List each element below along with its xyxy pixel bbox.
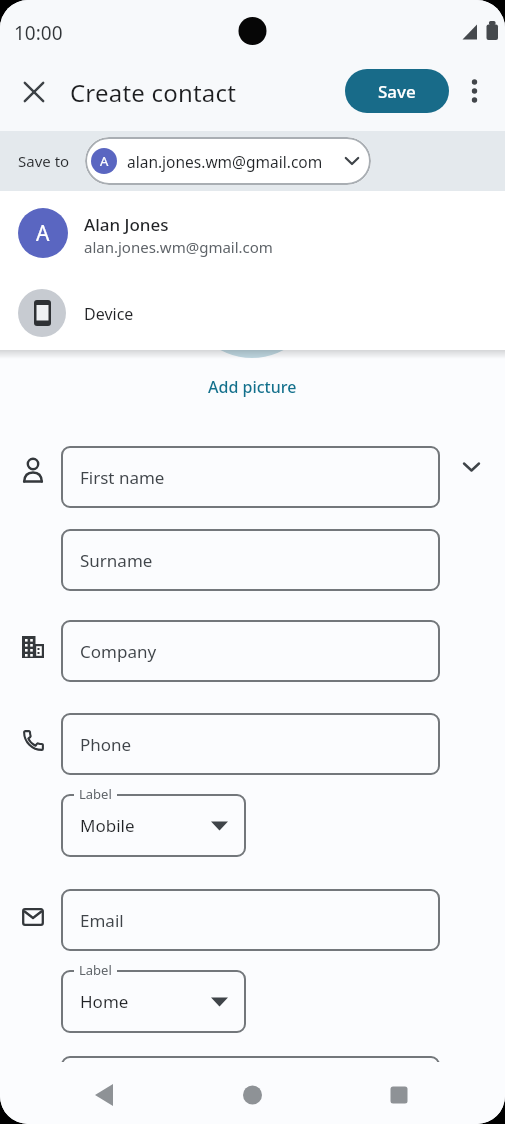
button[interactable]: Phone [61, 713, 440, 775]
staticText: Company [80, 640, 157, 663]
staticText: Mobile [80, 814, 135, 837]
button[interactable] [85, 1075, 125, 1115]
staticText: Save to [18, 151, 70, 171]
staticText: Label [79, 961, 112, 979]
staticText: Device [84, 303, 134, 325]
staticText: Alan Jones [84, 213, 169, 236]
staticText: Email [80, 909, 124, 932]
staticText: Save [378, 80, 416, 103]
button[interactable]: Save [345, 69, 449, 113]
button[interactable]: A [85, 137, 371, 185]
button[interactable]: First name [61, 446, 440, 508]
button[interactable] [0, 279, 505, 347]
staticText: Label [79, 785, 112, 803]
staticText: Phone [80, 733, 132, 756]
button[interactable]: Add picture [0, 374, 505, 400]
staticText: A [100, 152, 109, 170]
button[interactable]: Email [61, 889, 440, 951]
button[interactable]: Surname [61, 529, 440, 591]
staticText: First name [80, 466, 165, 489]
staticText: A [36, 219, 50, 248]
staticText: Create contact [70, 76, 237, 109]
staticText: alan.jones.wm@gmail.com [84, 237, 273, 257]
button[interactable] [14, 72, 52, 110]
staticText: Home [80, 990, 129, 1013]
button[interactable] [232, 1075, 272, 1115]
staticText: alan.jones.wm@gmail.com [127, 151, 323, 172]
button[interactable] [0, 199, 505, 267]
staticText: 10:00 [14, 20, 63, 46]
button[interactable]: Home [61, 970, 246, 1033]
button[interactable]: Company [61, 620, 440, 682]
button[interactable] [466, 74, 483, 108]
staticText: Add picture [208, 376, 297, 398]
button[interactable] [379, 1075, 419, 1115]
staticText: Surname [80, 549, 153, 572]
button[interactable]: Mobile [61, 794, 246, 857]
